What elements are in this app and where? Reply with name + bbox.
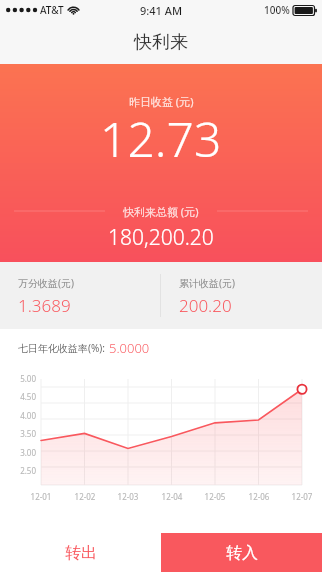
staticText: 转出 — [65, 543, 97, 563]
staticText: 3.50 — [2, 428, 36, 439]
staticText: 9:41 AM — [140, 3, 183, 18]
button[interactable]: 累计收益(元) — [161, 262, 322, 329]
staticText: 100% — [264, 3, 290, 17]
staticText: 12-02 — [69, 491, 101, 502]
staticText: 12-06 — [243, 491, 275, 502]
staticText: 昨日收益 (元) — [129, 94, 194, 109]
staticText: 12-01 — [25, 491, 57, 502]
staticText: 180,200.20 — [108, 223, 214, 252]
staticText: 3.00 — [2, 447, 36, 458]
staticText: 万分收益(元) — [18, 276, 74, 290]
staticText: 转入 — [226, 543, 258, 563]
staticText: 七日年化收益率(%): — [18, 341, 105, 355]
staticText: 12-04 — [156, 491, 188, 502]
staticText: 12-03 — [112, 491, 144, 502]
staticText: 4.00 — [2, 410, 36, 421]
staticText: 4.50 — [2, 391, 36, 402]
staticText: 200.20 — [179, 294, 232, 317]
staticText: 12-07 — [286, 491, 318, 502]
staticText: 快利来总额 (元) — [123, 204, 199, 219]
staticText: 12-05 — [199, 491, 231, 502]
staticText: 1.3689 — [18, 294, 71, 317]
staticText: 快利来 — [134, 31, 188, 54]
staticText: 5.00 — [2, 373, 36, 384]
staticText: 5.0000 — [109, 339, 150, 357]
staticText: 2.50 — [2, 465, 36, 476]
button[interactable]: 转出 — [0, 533, 161, 572]
staticText: AT&T — [40, 3, 64, 17]
button[interactable]: 万分收益(元) — [0, 262, 160, 329]
button[interactable]: 转入 — [161, 533, 322, 572]
staticText: 12.73 — [100, 106, 222, 171]
staticText: 累计收益(元) — [179, 276, 235, 290]
